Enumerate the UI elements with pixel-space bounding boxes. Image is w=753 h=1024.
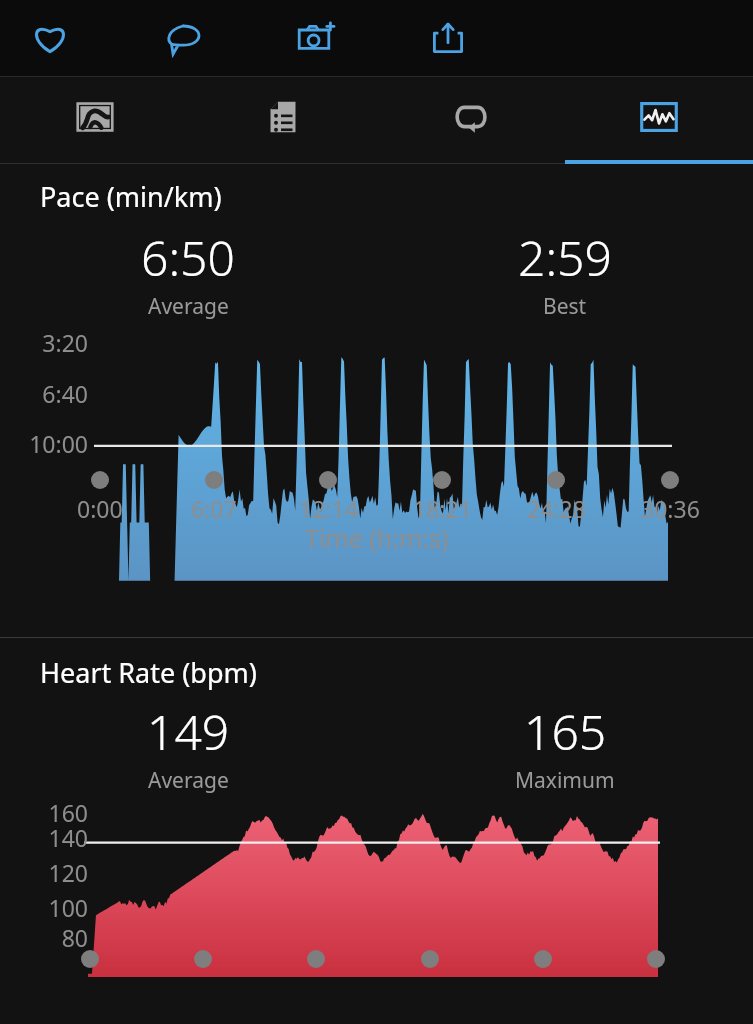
- staticText: Heart Rate (bpm): [40, 654, 257, 691]
- button[interactable]: Share: [415, 0, 481, 76]
- button[interactable]: Laps: [377, 77, 565, 164]
- staticText: 120: [38, 857, 88, 888]
- staticText: 10:00: [16, 428, 88, 459]
- staticText: 24:28: [527, 493, 586, 524]
- button[interactable]: Map route: [0, 77, 189, 164]
- staticText: 30:36: [641, 493, 700, 524]
- button[interactable]: Like: [17, 0, 83, 76]
- staticText: 12:14: [299, 493, 358, 524]
- staticText: 18:21: [413, 493, 472, 524]
- staticText: Average: [148, 292, 229, 321]
- staticText: 6:50: [141, 225, 235, 290]
- staticText: Pace (min/km): [40, 178, 222, 215]
- staticText: 149: [147, 699, 230, 764]
- staticText: 100: [38, 892, 88, 923]
- staticText: Average: [148, 766, 229, 795]
- staticText: 6:40: [30, 378, 88, 409]
- staticText: 6:07: [191, 493, 237, 524]
- staticText: Best: [543, 292, 587, 321]
- button[interactable]: Charts: [565, 77, 753, 164]
- button[interactable]: Comment: [150, 0, 216, 76]
- staticText: 0:00: [77, 493, 123, 524]
- staticText: 140: [38, 822, 88, 853]
- staticText: Maximum: [515, 766, 615, 795]
- button[interactable]: Details: [189, 77, 377, 164]
- staticText: 3:20: [30, 327, 88, 358]
- staticText: 2:59: [518, 225, 612, 290]
- staticText: 80: [52, 922, 88, 953]
- staticText: Time (h:m:s): [305, 521, 449, 555]
- button[interactable]: Add photo: [283, 0, 349, 76]
- staticText: 165: [524, 699, 607, 764]
- staticText: 160: [38, 797, 88, 828]
